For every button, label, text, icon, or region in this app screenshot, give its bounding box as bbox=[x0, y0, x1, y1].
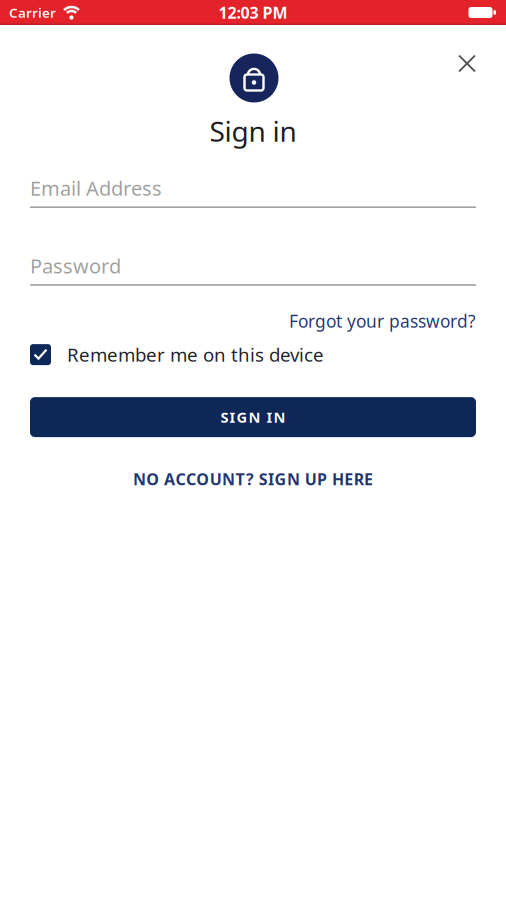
staticText: 12:03 PM bbox=[218, 2, 287, 23]
staticText: Remember me on this device bbox=[67, 342, 324, 367]
staticText: Forgot your password? bbox=[289, 310, 476, 333]
staticText: NO ACCOUNT? SIGN UP HERE bbox=[133, 468, 373, 490]
button[interactable]: Remember me on this device bbox=[30, 342, 476, 367]
staticText: SIGN IN bbox=[220, 407, 285, 427]
staticText: Email Address bbox=[30, 175, 162, 201]
button[interactable]: NO ACCOUNT? SIGN UP HERE bbox=[30, 468, 476, 490]
button[interactable] bbox=[458, 54, 476, 72]
button[interactable]: Email Address bbox=[30, 177, 476, 208]
button[interactable]: SIGN IN bbox=[30, 397, 476, 437]
staticText: Carrier bbox=[9, 4, 56, 21]
button[interactable]: Password bbox=[30, 255, 476, 286]
staticText: Sign in bbox=[209, 112, 296, 150]
staticText: Password bbox=[30, 252, 121, 279]
button[interactable]: Forgot your password? bbox=[289, 310, 476, 333]
